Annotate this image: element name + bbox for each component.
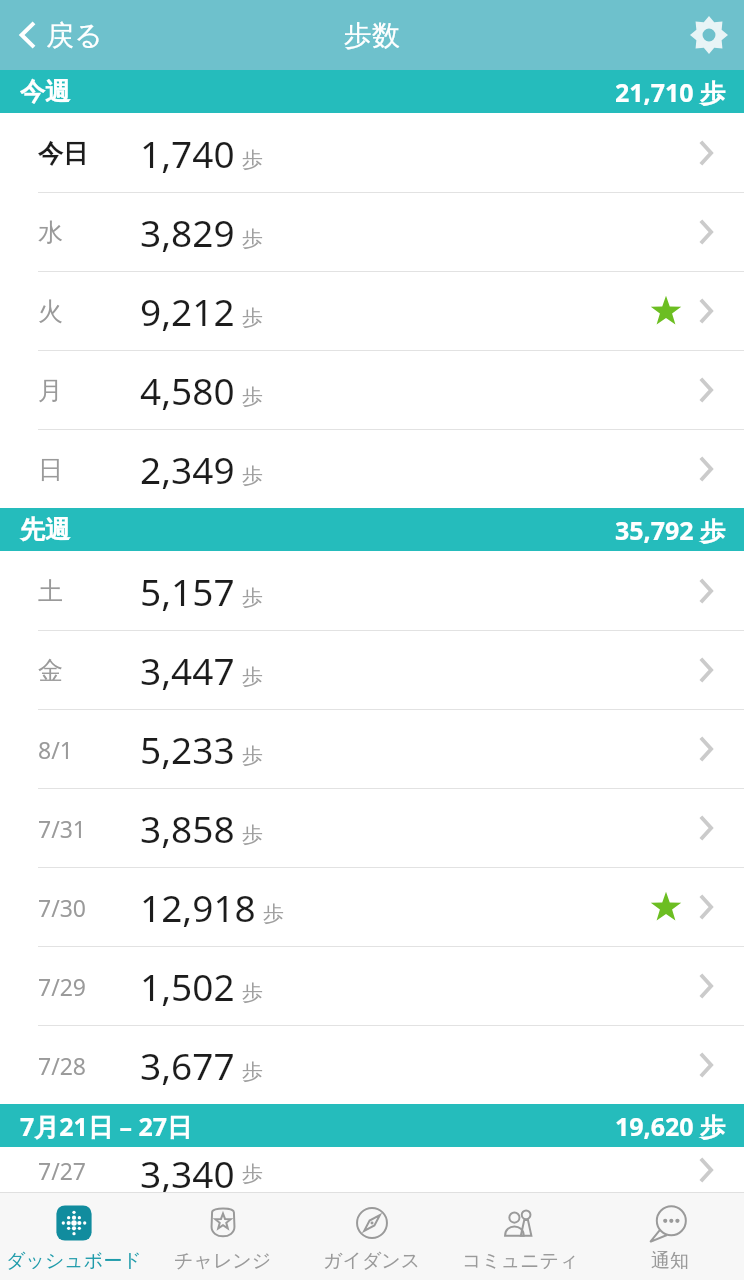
button[interactable]: Settings: [674, 0, 744, 70]
staticText: 4,580: [140, 365, 235, 415]
staticText: 歩: [242, 147, 263, 173]
staticText: 歩: [242, 384, 263, 410]
button[interactable]: 7/29: [0, 946, 744, 1025]
button[interactable]: 通知: [595, 1193, 744, 1280]
staticText: 7月21日 – 27日: [20, 1109, 193, 1143]
staticText: 19,620 歩: [615, 1109, 726, 1143]
staticText: 歩: [242, 743, 263, 769]
staticText: コミュニティ: [462, 1249, 579, 1273]
staticText: 1,502: [140, 961, 235, 1011]
staticText: 3,858: [140, 803, 235, 853]
staticText: ダッシュボード: [6, 1249, 142, 1273]
staticText: 火: [38, 296, 63, 327]
staticText: 歩: [263, 901, 284, 927]
button[interactable]: 7/30: [0, 867, 744, 946]
button[interactable]: チャレンジ: [148, 1193, 297, 1280]
staticText: 歩: [242, 822, 263, 848]
button[interactable]: ガイダンス: [297, 1193, 446, 1280]
staticText: ガイダンス: [323, 1249, 421, 1273]
staticText: 7/30: [38, 892, 87, 923]
staticText: 今日: [38, 138, 88, 169]
staticText: 歩: [242, 980, 263, 1006]
staticText: 7/28: [38, 1050, 87, 1081]
staticText: 戻る: [46, 18, 103, 53]
button[interactable]: 7/27: [0, 1147, 744, 1192]
staticText: 土: [38, 576, 63, 607]
staticText: 2,349: [140, 444, 235, 494]
staticText: 日: [38, 454, 63, 485]
staticText: 歩: [242, 463, 263, 489]
staticText: 21,710 歩: [615, 75, 726, 109]
staticText: 月: [38, 375, 63, 406]
staticText: 歩: [242, 305, 263, 331]
button[interactable]: コミュニティ: [446, 1193, 595, 1280]
staticText: 9,212: [140, 286, 235, 336]
button[interactable]: 8/1: [0, 709, 744, 788]
button[interactable]: 今日: [0, 113, 744, 192]
staticText: チャレンジ: [174, 1249, 272, 1273]
staticText: 5,157: [140, 566, 235, 616]
staticText: 歩: [242, 226, 263, 252]
staticText: 歩数: [344, 18, 400, 53]
staticText: 35,792 歩: [615, 513, 726, 547]
staticText: 水: [38, 217, 63, 248]
staticText: 7/29: [38, 971, 87, 1002]
staticText: 3,447: [140, 645, 235, 695]
button[interactable]: 7/28: [0, 1025, 744, 1104]
staticText: 7/31: [38, 813, 87, 844]
staticText: 7/27: [38, 1155, 87, 1186]
button[interactable]: 土: [0, 551, 744, 630]
staticText: 今週: [20, 76, 70, 107]
staticText: 通知: [651, 1249, 689, 1273]
staticText: 歩: [242, 1059, 263, 1085]
staticText: 3,340: [140, 1148, 235, 1192]
staticText: 3,829: [140, 207, 235, 257]
button[interactable]: 月: [0, 350, 744, 429]
staticText: 先週: [20, 514, 70, 545]
staticText: 歩: [242, 664, 263, 690]
staticText: 1,740: [140, 128, 235, 178]
staticText: 金: [38, 655, 63, 686]
button[interactable]: 7/31: [0, 788, 744, 867]
staticText: 歩: [242, 585, 263, 611]
button[interactable]: ダッシュボード: [0, 1193, 148, 1280]
button[interactable]: 戻る: [0, 0, 119, 70]
button[interactable]: 金: [0, 630, 744, 709]
staticText: 12,918: [140, 882, 256, 932]
button[interactable]: 水: [0, 192, 744, 271]
staticText: 3,677: [140, 1040, 235, 1090]
button[interactable]: 火: [0, 271, 744, 350]
staticText: 歩: [242, 1161, 263, 1187]
staticText: 8/1: [38, 734, 73, 765]
staticText: 5,233: [140, 724, 235, 774]
button[interactable]: 日: [0, 429, 744, 508]
